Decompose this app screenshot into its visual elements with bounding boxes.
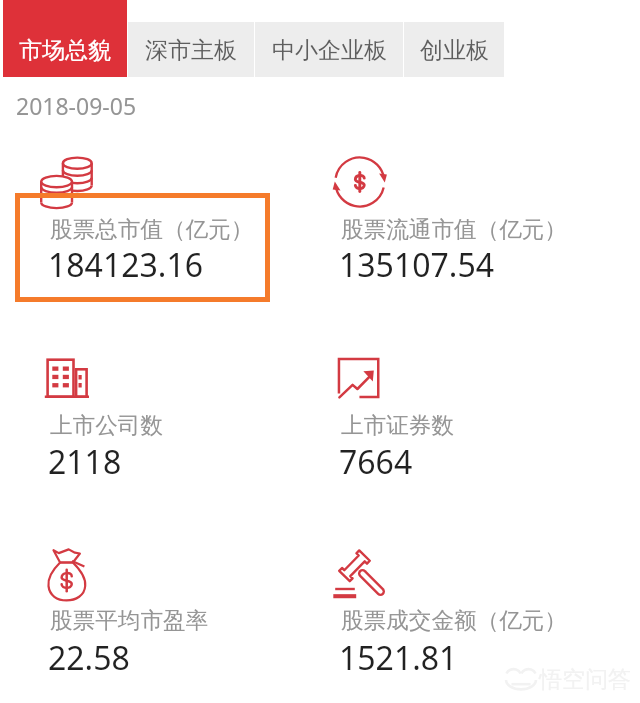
button[interactable]: 上市证券数 — [337, 357, 381, 401]
staticText: 1521.81 — [339, 636, 458, 680]
button[interactable]: 股票平均市盈率 — [46, 548, 88, 602]
staticText: 股票成交金额（亿元） — [341, 606, 567, 634]
staticText: 上市公司数 — [50, 411, 163, 439]
button[interactable]: 股票总市值 — [41, 156, 93, 210]
staticText: 135107.54 — [339, 243, 495, 287]
staticText: 上市证券数 — [341, 411, 454, 439]
staticText: 创业板 — [420, 36, 489, 65]
staticText: 184123.16 — [48, 243, 204, 287]
button[interactable]: 创业板 — [404, 22, 504, 77]
staticText: 市场总貌 — [19, 36, 111, 65]
staticText: 股票总市值（亿元） — [50, 215, 254, 243]
button[interactable]: 深市主板 — [128, 22, 254, 77]
button[interactable]: 中小企业板 — [255, 22, 403, 77]
button[interactable]: 市场总貌 — [3, 0, 127, 77]
staticText: 2018-09-05 — [16, 90, 137, 121]
staticText: 22.58 — [48, 636, 130, 680]
staticText: 中小企业板 — [272, 36, 387, 65]
staticText: 股票流通市值（亿元） — [341, 215, 567, 243]
button[interactable]: 股票流通市值 — [334, 157, 386, 209]
staticText: 7664 — [339, 440, 413, 484]
staticText: 悟空问答 — [539, 665, 631, 694]
staticText: 股票平均市盈率 — [50, 606, 209, 634]
staticText: 深市主板 — [145, 36, 237, 65]
button[interactable]: 股票成交金额 — [330, 544, 390, 604]
staticText: 2118 — [48, 440, 122, 484]
button[interactable]: 上市公司数 — [44, 356, 92, 402]
